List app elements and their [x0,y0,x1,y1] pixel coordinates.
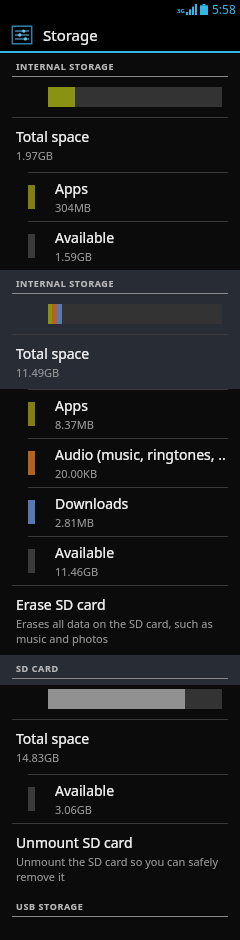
staticText: 1.59GB [55,249,92,264]
staticText: 8.37MB [55,417,94,432]
staticText: 3G [177,7,185,15]
button[interactable]: Downloads [0,488,240,536]
staticText: 2.81MB [55,515,94,530]
button[interactable]: Available [0,222,240,270]
staticText: 11.49GB [16,365,60,380]
staticText: INTERNAL STORAGE [16,277,115,289]
staticText: USB STORAGE [16,900,84,912]
staticText: SD CARD [16,662,59,674]
staticText: Total space [16,344,90,363]
button[interactable]: Total space [0,335,240,389]
staticText: 1.97GB [16,148,53,163]
button[interactable]: Erase SD card [0,586,240,655]
staticText: Storage [43,25,98,45]
staticText: Available [55,781,115,800]
staticText: Downloads [55,494,129,513]
staticText: Total space [16,127,90,146]
staticText: Erase SD card [16,595,106,614]
button[interactable]: Available [0,775,240,823]
staticText: Total space [16,729,90,748]
staticText: Available [55,228,115,247]
staticText: Audio (music, ringtones, .. [55,445,226,464]
button[interactable]: Available [0,537,240,585]
staticText: Apps [55,396,88,415]
staticText: 5:58 [212,1,236,17]
staticText: 304MB [55,200,92,215]
button[interactable]: Apps [0,390,240,438]
staticText: 20.00KB [55,466,98,481]
button[interactable]: Apps [0,173,240,221]
staticText: 3.06GB [55,802,92,817]
staticText: Erases all data on the SD card, such as … [16,616,228,646]
staticText: Unmount SD card [16,833,133,852]
staticText: 14.83GB [16,750,60,765]
staticText: 11.46GB [55,564,99,579]
staticText: INTERNAL STORAGE [16,60,115,72]
staticText: Available [55,543,115,562]
button[interactable]: Total space [0,720,240,774]
button[interactable]: Audio (music, ringtones, .. [0,439,240,487]
other: Storage settings icon [11,24,33,46]
button[interactable]: Storage settings icon [0,18,240,51]
button[interactable]: Unmount SD card [0,824,240,893]
staticText: Apps [55,179,88,198]
staticText: Unmount the SD card so you can safely re… [16,854,228,884]
button[interactable]: Total space [0,118,240,172]
